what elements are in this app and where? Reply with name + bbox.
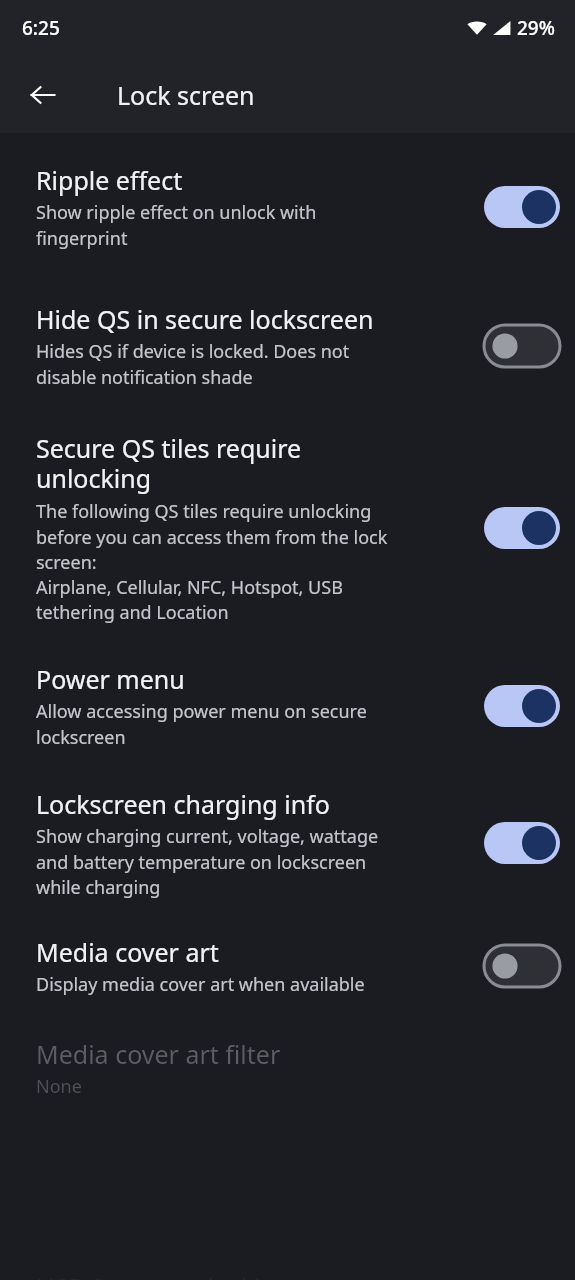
staticText: Lock screen: [117, 78, 255, 112]
staticText: 29%: [517, 15, 555, 41]
staticText: Ripple effect: [36, 163, 183, 197]
staticText: The following QS tiles require unlocking…: [36, 499, 388, 624]
staticText: Hides QS if device is locked. Does not d…: [36, 339, 350, 389]
staticText: Display media cover art when available: [36, 972, 365, 997]
button[interactable]: Hide QS in secure lockscreen: [0, 250, 575, 389]
staticText: Lockscreen charging info: [36, 787, 330, 821]
staticText: Show ripple effect on unlock with finger…: [36, 200, 317, 250]
staticText: 6:25: [22, 15, 60, 41]
button[interactable]: Back: [15, 67, 71, 123]
button[interactable]: Power menu: [0, 624, 575, 749]
button[interactable]: Media cover art: [0, 899, 575, 997]
button[interactable]: Media cover art filter: [0, 997, 575, 1099]
staticText: Show charging current, voltage, wattage …: [36, 824, 379, 899]
staticText: Media cover art: [36, 935, 219, 969]
staticText: Power menu: [36, 662, 185, 696]
staticText: None: [36, 1074, 82, 1099]
staticText: Allow accessing power menu on secure loc…: [36, 699, 367, 749]
staticText: Hide QS in secure lockscreen: [36, 302, 374, 336]
button[interactable]: Secure QS tiles require unlocking: [0, 389, 575, 624]
staticText: Secure QS tiles require unlocking: [36, 431, 302, 496]
button[interactable]: Ripple effect: [0, 133, 575, 250]
button[interactable]: Lockscreen charging info: [0, 749, 575, 899]
staticText: Media cover art filter: [36, 1037, 281, 1071]
